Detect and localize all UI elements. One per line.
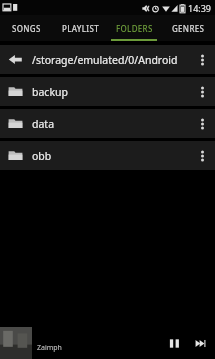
button[interactable]: SONGS	[0, 15, 53, 41]
button[interactable]: backup	[0, 77, 215, 106]
button[interactable]: FOLDERS	[107, 15, 161, 41]
button[interactable]: data	[0, 109, 215, 138]
button[interactable]: Next track	[187, 327, 213, 359]
button[interactable]: More options	[191, 45, 213, 74]
staticText: obb	[32, 149, 191, 163]
staticText: data	[32, 117, 191, 131]
staticText: Zaimph	[37, 343, 62, 353]
staticText: PLAYLIST	[62, 23, 99, 34]
staticText: 14:39	[188, 2, 212, 14]
button[interactable]: More options	[191, 109, 213, 138]
staticText: /storage/emulated/0/Android	[32, 53, 191, 67]
button[interactable]: /storage/emulated/0/Android	[0, 45, 215, 74]
button[interactable]: GENRES	[161, 15, 215, 41]
button[interactable]: Zaimph	[0, 327, 215, 359]
staticText: backup	[32, 85, 191, 99]
staticText: FOLDERS	[116, 23, 153, 34]
button[interactable]: PLAYLIST	[53, 15, 107, 41]
button[interactable]: More options	[191, 141, 213, 170]
button[interactable]: More options	[191, 77, 213, 106]
button[interactable]: obb	[0, 141, 215, 170]
staticText: GENRES	[172, 23, 205, 34]
staticText: SONGS	[12, 23, 41, 34]
button[interactable]: Pause	[161, 327, 187, 359]
